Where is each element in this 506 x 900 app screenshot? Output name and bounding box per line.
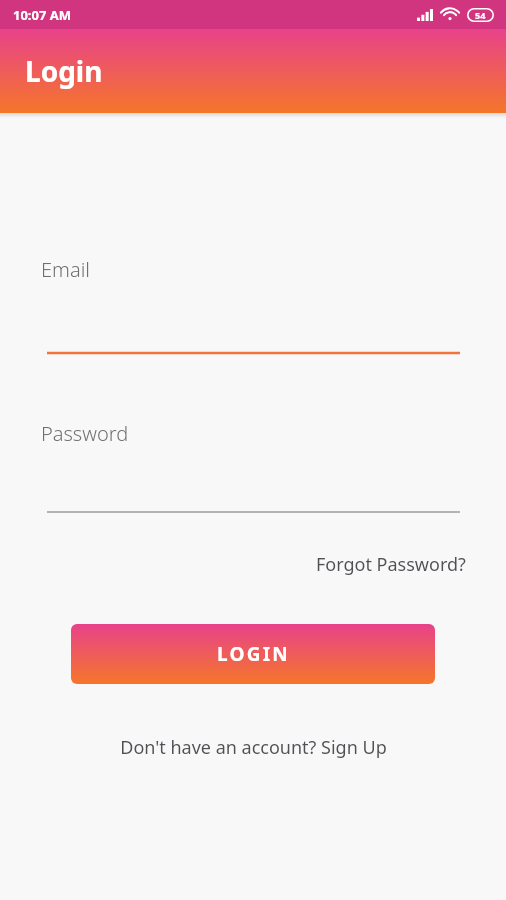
button[interactable]: Don't have an account? Sign Up [114,730,393,765]
button[interactable]: Email [0,240,506,365]
staticText: Forgot Password? [316,552,466,577]
button[interactable]: LOGIN [71,624,435,684]
other: Cellular signal [417,9,433,21]
staticText: Login [25,52,103,90]
staticText: Don't have an account? Sign Up [120,735,387,760]
staticText: 54 [475,9,486,21]
other: Battery 54 percent [467,8,494,22]
button[interactable]: Forgot Password? [312,548,470,581]
staticText: 10:07 AM [13,6,72,24]
staticText: LOGIN [217,641,290,667]
other: Wi-Fi [442,9,458,21]
staticText: Email [41,256,90,283]
button[interactable]: Password [0,404,506,529]
staticText: Password [41,420,129,447]
